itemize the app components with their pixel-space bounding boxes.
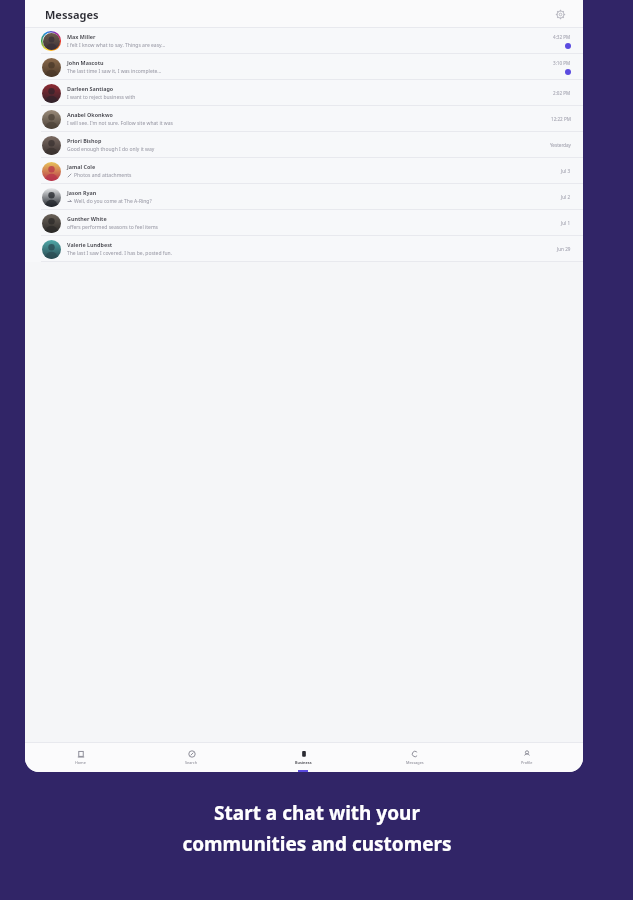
staticText: 3:10 PM bbox=[553, 60, 571, 66]
staticText: Home bbox=[75, 760, 86, 765]
button[interactable]: Jamal Cole bbox=[25, 158, 583, 184]
button[interactable]: Business bbox=[247, 742, 359, 772]
staticText: Photos and attachments bbox=[74, 172, 132, 179]
button[interactable]: Profile bbox=[471, 742, 583, 772]
staticText: 4:32 PM bbox=[553, 34, 571, 40]
staticText: I felt I know what to say. Things are ea… bbox=[67, 42, 166, 49]
staticText: Search bbox=[185, 760, 198, 765]
staticText: Anabel Okonkwo bbox=[67, 111, 113, 118]
staticText: communities and customers bbox=[182, 831, 452, 857]
staticText: Yesterday bbox=[550, 142, 571, 148]
staticText: The last I saw I covered. I has be, post… bbox=[67, 250, 173, 257]
staticText: Messages bbox=[45, 7, 99, 22]
staticText: Jamal Cole bbox=[67, 163, 96, 170]
button[interactable]: Valerie Lundbest bbox=[25, 236, 583, 262]
staticText: I will see. I'm not sure. Follow site wh… bbox=[67, 120, 173, 127]
staticText: Jason Ryan bbox=[67, 189, 97, 196]
staticText: John Mascotu bbox=[67, 59, 104, 66]
staticText: Start a chat with your bbox=[214, 800, 420, 826]
button[interactable]: Priori Bishop bbox=[25, 132, 583, 158]
button[interactable]: Messages bbox=[359, 742, 471, 772]
staticText: The last time I saw it, I was incomplete… bbox=[67, 68, 162, 75]
staticText: Messages bbox=[406, 760, 424, 765]
staticText: Jul 3 bbox=[561, 168, 571, 174]
staticText: Profile bbox=[521, 760, 533, 765]
staticText: offers performed seasons to feel items bbox=[67, 224, 158, 231]
button[interactable]: Darleen Santiago bbox=[25, 80, 583, 106]
button[interactable]: Anabel Okonkwo bbox=[25, 106, 583, 132]
staticText: Business bbox=[295, 760, 312, 765]
button[interactable]: Gunther White bbox=[25, 210, 583, 236]
staticText: Max Miller bbox=[67, 33, 96, 40]
button[interactable]: John Mascotu bbox=[25, 54, 583, 80]
button[interactable]: Search bbox=[136, 742, 247, 772]
staticText: Priori Bishop bbox=[67, 137, 102, 144]
staticText: Valerie Lundbest bbox=[67, 241, 113, 248]
staticText: 2:02 PM bbox=[553, 90, 571, 96]
staticText: 12:22 PM bbox=[551, 116, 571, 122]
button[interactable]: Max Miller bbox=[25, 28, 583, 54]
staticText: I want to reject business with bbox=[67, 94, 136, 101]
button[interactable]: Home bbox=[25, 742, 136, 772]
staticText: Well, do you come at The A-Ring? bbox=[74, 198, 152, 205]
staticText: Darleen Santiago bbox=[67, 85, 114, 92]
staticText: Jun 29 bbox=[557, 246, 571, 252]
button[interactable]: Jason Ryan bbox=[25, 184, 583, 210]
staticText: Gunther White bbox=[67, 215, 107, 222]
staticText: Good enough though I do only it way bbox=[67, 146, 155, 153]
button[interactable]: Settings bbox=[551, 5, 569, 23]
staticText: Jul 1 bbox=[561, 220, 571, 226]
staticText: Jul 2 bbox=[561, 194, 571, 200]
